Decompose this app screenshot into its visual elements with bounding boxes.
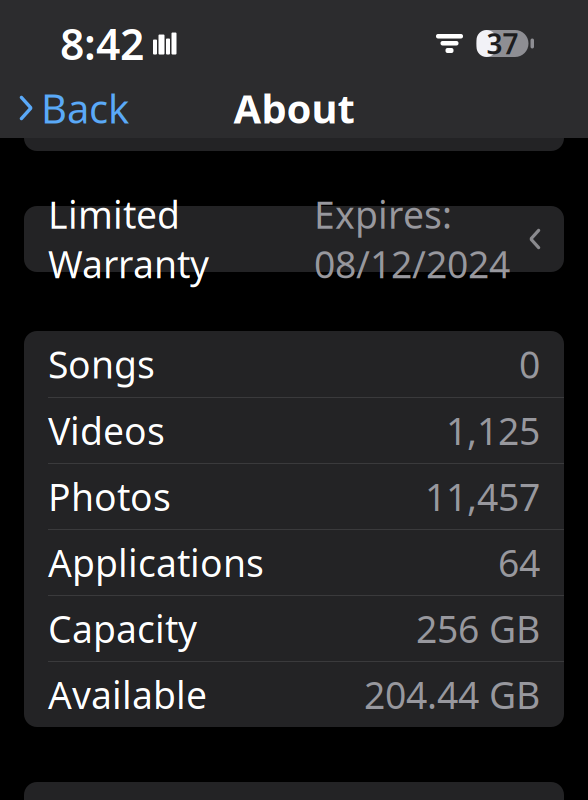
staticText: 64 [498,538,540,587]
button[interactable]: Back [4,73,143,142]
staticText: 0 [519,339,540,389]
button[interactable]: Videos [24,398,564,463]
staticText: Expires: 08/12/2024 [314,189,510,289]
staticText: 8:42 [60,15,144,72]
staticText: About [233,81,354,134]
staticText: Applications [48,538,264,587]
staticText: Videos [48,406,165,455]
button[interactable]: Capacity [24,596,564,661]
staticText: 37 [486,25,518,62]
button[interactable]: Limited Warranty [0,206,588,272]
staticText: 1,125 [446,406,540,455]
button[interactable]: Photos [24,464,564,529]
staticText: Available [48,670,207,719]
staticText: Back [41,81,129,134]
button[interactable]: Available [24,662,564,727]
staticText: Limited Warranty [48,189,209,289]
staticText: 256 GB [416,604,540,653]
staticText: Capacity [48,604,197,653]
staticText: Songs [48,339,155,389]
staticText: 11,457 [425,472,540,521]
staticText: 204.44 GB [364,670,540,719]
button[interactable]: Songs [24,331,564,397]
button[interactable]: Applications [24,530,564,595]
staticText: Photos [48,472,171,521]
